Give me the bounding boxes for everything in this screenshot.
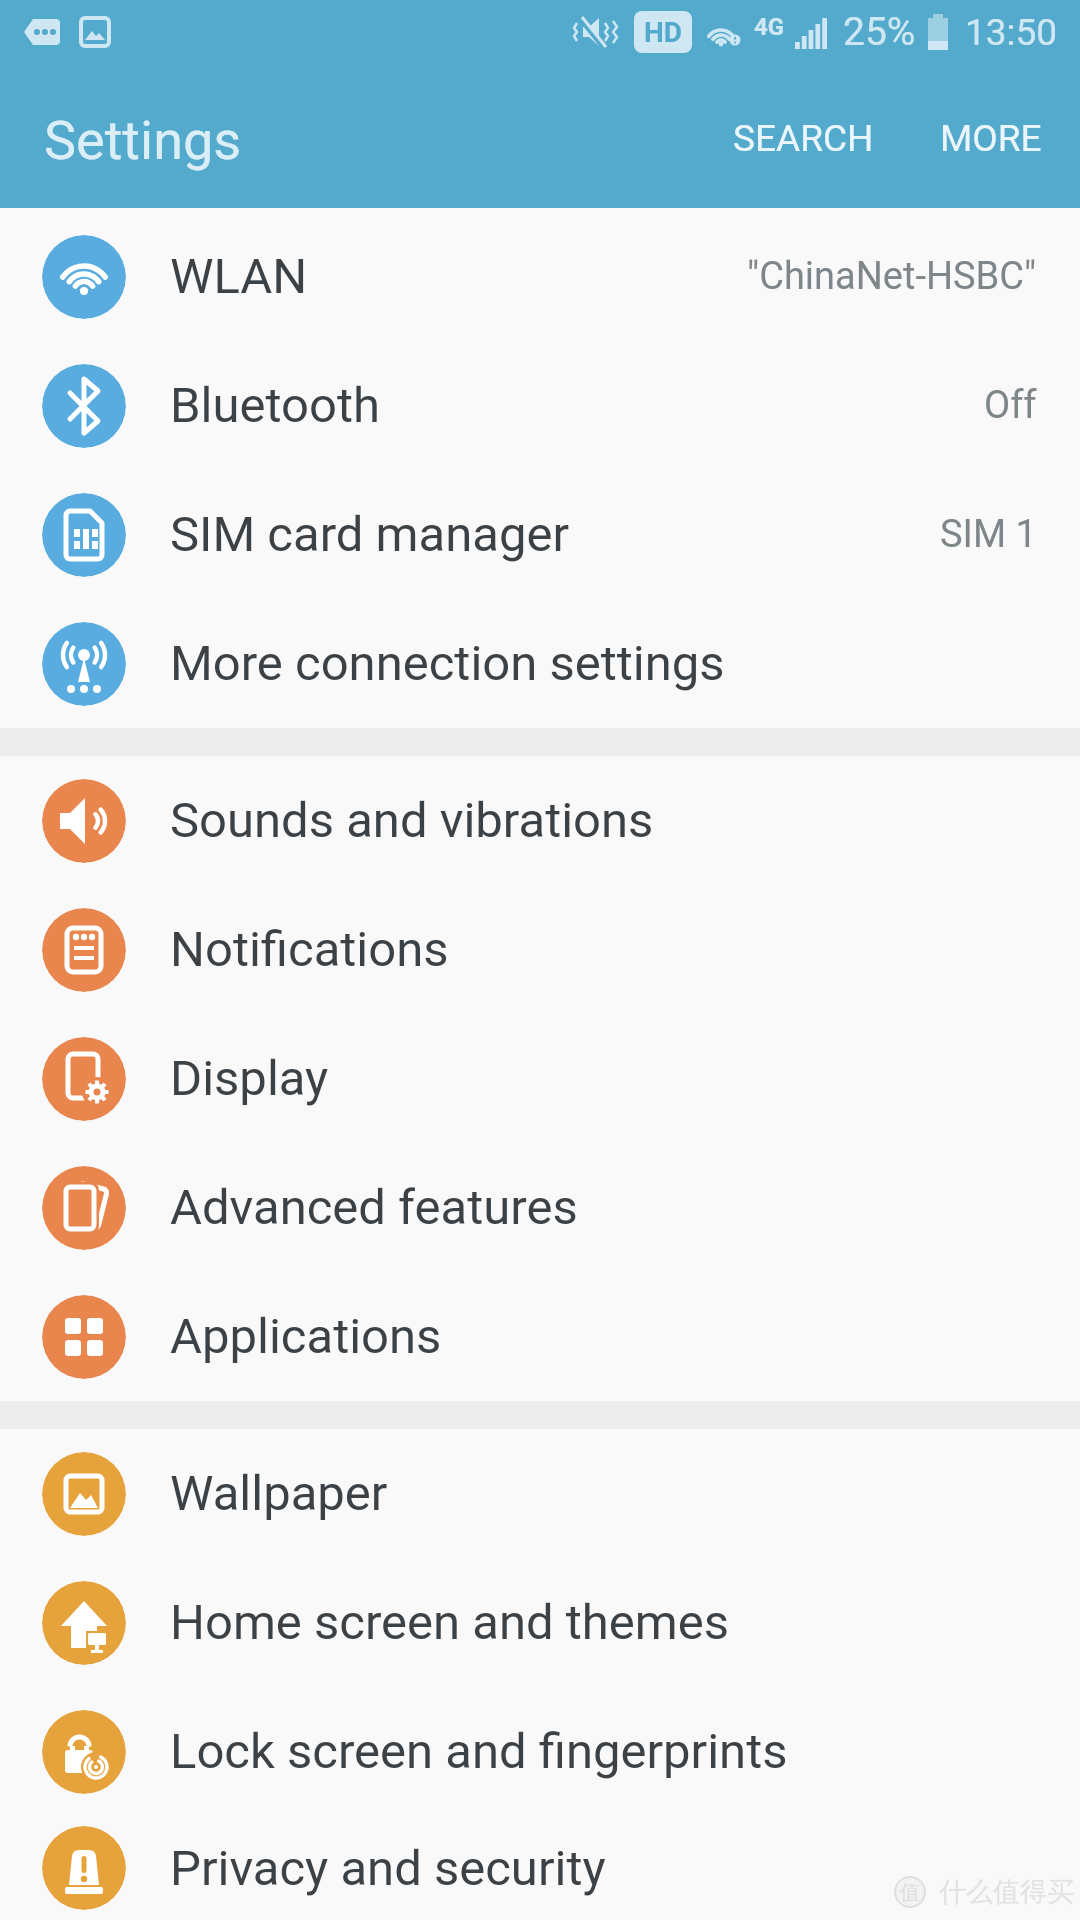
button[interactable]: Advanced features: [0, 1143, 1080, 1272]
staticText: 25%: [843, 9, 916, 55]
staticText: More connection settings: [170, 635, 725, 692]
staticText: SEARCH: [733, 117, 874, 160]
button[interactable]: More connection settings: [0, 599, 1080, 728]
button[interactable]: Display: [0, 1014, 1080, 1143]
button[interactable]: Sounds and vibrations: [0, 756, 1080, 885]
staticText: WLAN: [170, 248, 308, 305]
staticText: 13:50: [965, 11, 1058, 54]
button[interactable]: MORE: [940, 117, 1042, 160]
button[interactable]: SEARCH: [733, 117, 874, 160]
staticText: Display: [170, 1050, 329, 1107]
staticText: Privacy and security: [170, 1840, 606, 1897]
button[interactable]: Notifications: [0, 885, 1080, 1014]
staticText: "ChinaNet-HSBC": [747, 254, 1037, 299]
staticText: Lock screen and fingerprints: [170, 1723, 788, 1780]
button[interactable]: Privacy and security: [0, 1816, 1080, 1920]
staticText: 值: [900, 1880, 920, 1905]
button[interactable]: WLAN: [0, 212, 1080, 341]
staticText: Notifications: [170, 921, 449, 978]
staticText: Off: [984, 383, 1037, 428]
staticText: Bluetooth: [170, 377, 380, 434]
staticText: HD: [644, 16, 683, 49]
staticText: 什么值得买: [939, 1875, 1074, 1909]
staticText: Wallpaper: [170, 1465, 388, 1522]
button[interactable]: SIM card manager: [0, 470, 1080, 599]
staticText: Settings: [44, 109, 242, 172]
button[interactable]: Wallpaper: [0, 1429, 1080, 1558]
staticText: Sounds and vibrations: [170, 792, 654, 849]
staticText: 4G: [754, 13, 785, 41]
staticText: MORE: [940, 117, 1042, 160]
staticText: Advanced features: [170, 1179, 578, 1236]
staticText: SIM card manager: [170, 506, 570, 563]
staticText: Applications: [170, 1308, 442, 1365]
staticText: SIM 1: [940, 512, 1037, 557]
button[interactable]: Bluetooth: [0, 341, 1080, 470]
button[interactable]: Applications: [0, 1272, 1080, 1401]
button[interactable]: Lock screen and fingerprints: [0, 1687, 1080, 1816]
button[interactable]: Home screen and themes: [0, 1558, 1080, 1687]
staticText: Home screen and themes: [170, 1594, 730, 1651]
